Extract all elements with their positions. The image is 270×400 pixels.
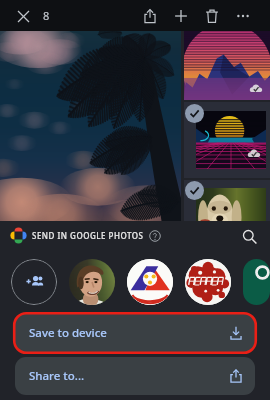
- button[interactable]: Selected: [185, 104, 204, 123]
- button[interactable]: More options: [228, 1, 258, 31]
- staticText: Share to...: [29, 368, 85, 384]
- button[interactable]: Contact 2: [127, 259, 173, 305]
- staticText: Save to device: [29, 325, 107, 341]
- button[interactable]: Contact 4: [243, 259, 270, 305]
- button[interactable]: Add: [166, 1, 196, 31]
- button[interactable]: Help: [147, 228, 163, 244]
- button[interactable]: Search: [236, 223, 262, 249]
- button[interactable]: Share: [135, 1, 165, 31]
- staticText: SEND IN GOOGLE PHOTOS: [32, 230, 144, 241]
- button[interactable]: Delete: [197, 1, 227, 31]
- button[interactable]: Save to device: [15, 314, 255, 352]
- button[interactable]: Share to...: [15, 357, 255, 395]
- button[interactable]: Contact 1: [69, 259, 115, 305]
- button[interactable]: Add people: [11, 259, 57, 305]
- button[interactable]: Close: [8, 1, 38, 31]
- staticText: 8: [43, 8, 50, 23]
- button[interactable]: Selected: [185, 181, 204, 200]
- button[interactable]: Contact 3: [185, 259, 231, 305]
